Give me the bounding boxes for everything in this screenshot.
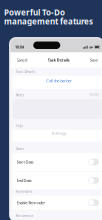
button[interactable]: Save — [88, 55, 100, 65]
button[interactable]: Cancel — [14, 55, 29, 65]
staticText: Tags — [15, 123, 23, 128]
staticText: Enable Reminder — [16, 200, 45, 205]
staticText: Call the barber — [46, 78, 72, 83]
staticText: Dates — [15, 147, 24, 151]
staticText: 10:04 — [15, 44, 24, 50]
button[interactable]: End Date — [12, 171, 102, 189]
button[interactable]: Start Date — [12, 153, 102, 171]
staticText: Notes — [15, 93, 24, 97]
staticText: End Date — [16, 178, 31, 183]
button[interactable]: Enable Reminder — [12, 196, 102, 210]
staticText: Add tags — [52, 131, 67, 136]
staticText: 0/500 — [90, 93, 99, 97]
staticText: Start Date — [16, 159, 33, 165]
staticText: Save — [90, 57, 98, 63]
staticText: Powerful To-Do — [4, 7, 65, 18]
staticText: Cancel — [16, 57, 27, 63]
staticText: Reminders — [15, 189, 32, 194]
staticText: Task Details — [48, 57, 70, 63]
staticText: Recurrence — [15, 214, 33, 218]
staticText: Task Details — [15, 69, 35, 74]
staticText: management features — [4, 16, 93, 27]
